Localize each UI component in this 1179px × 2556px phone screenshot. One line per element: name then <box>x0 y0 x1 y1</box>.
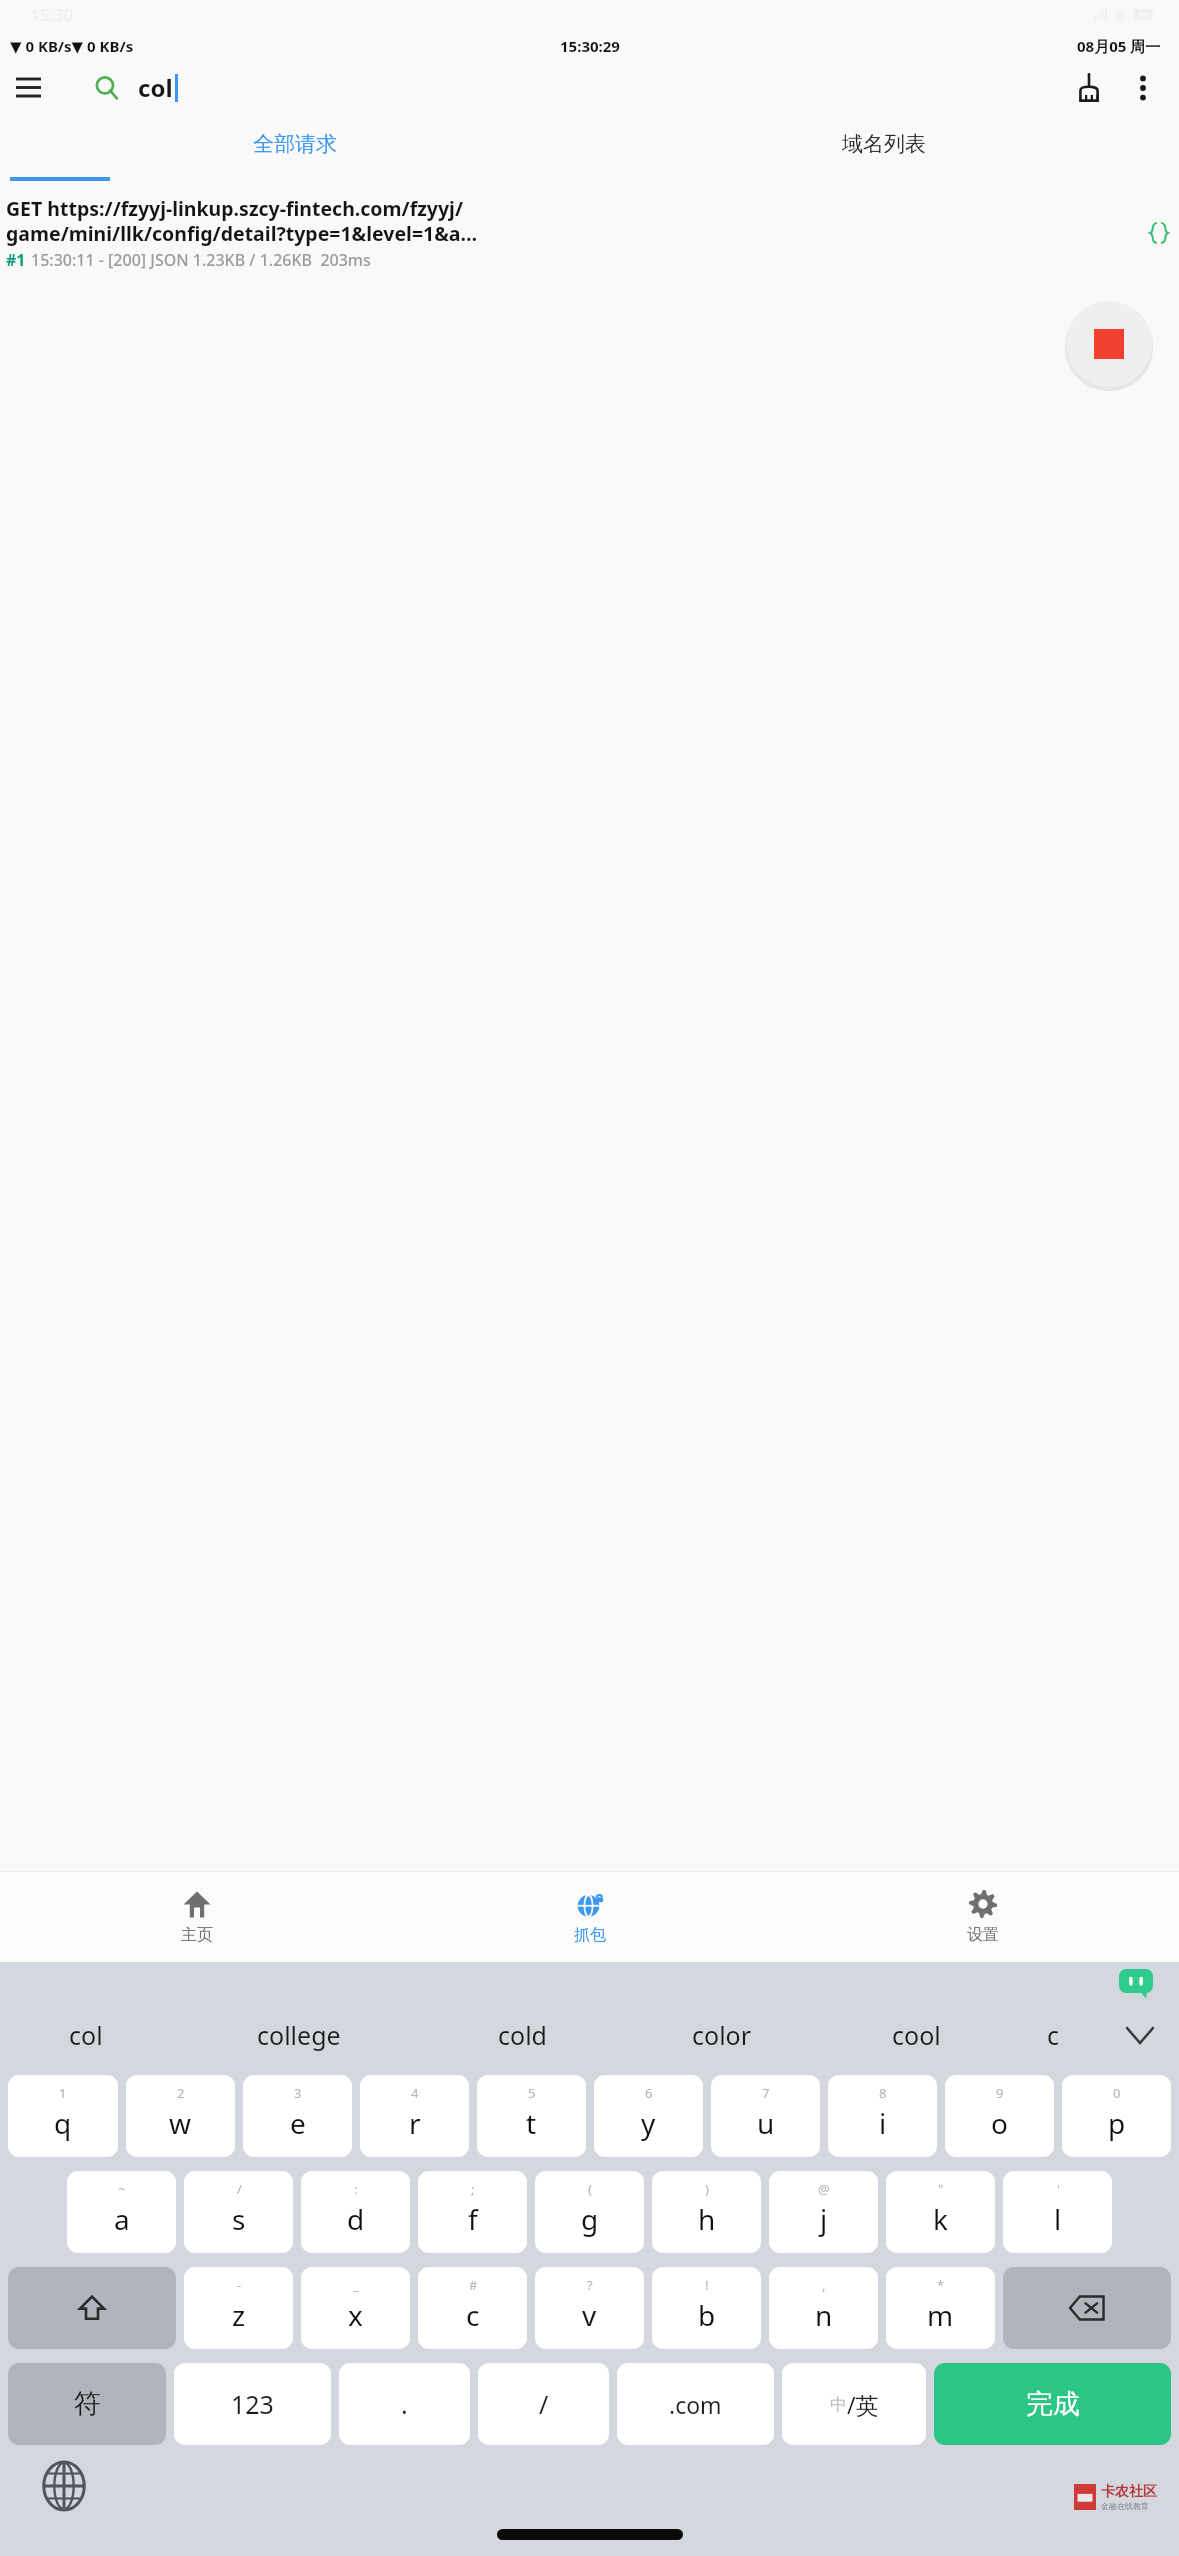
staticText: v <box>582 2296 597 2334</box>
button[interactable]: Stop capture <box>1066 301 1152 387</box>
staticText: 卡农社区 <box>1101 2483 1157 2501</box>
button[interactable]: 6 <box>594 2075 703 2157</box>
button[interactable]: ' <box>1003 2171 1112 2253</box>
button[interactable]: . <box>339 2363 470 2445</box>
staticText: col <box>138 71 173 104</box>
staticText: / <box>539 2387 549 2421</box>
button[interactable]: ! <box>652 2267 761 2349</box>
button[interactable]: ? <box>535 2267 644 2349</box>
button[interactable]: @ <box>769 2171 878 2253</box>
button[interactable]: Clear <box>1061 64 1117 111</box>
button[interactable]: Shift <box>8 2267 176 2349</box>
staticText: 9 <box>996 2084 1004 2102</box>
button[interactable]: : <box>301 2171 410 2253</box>
staticText: s <box>232 2200 246 2238</box>
staticText: t <box>526 2104 537 2142</box>
button[interactable]: ) <box>652 2171 761 2253</box>
staticText: - <box>237 2276 242 2294</box>
other: Search <box>94 75 120 101</box>
staticText: ~ <box>118 2180 126 2198</box>
staticText: o <box>991 2104 1008 2142</box>
staticText: /英 <box>847 2389 879 2420</box>
staticText: # <box>469 2276 478 2294</box>
button[interactable]: - <box>184 2267 293 2349</box>
button[interactable]: 7 <box>711 2075 820 2157</box>
button[interactable]: 123 <box>174 2363 331 2445</box>
staticText: m <box>927 2296 954 2334</box>
button[interactable]: _ <box>301 2267 410 2349</box>
staticText: 15:30:29 <box>560 36 620 56</box>
button[interactable]: / <box>184 2171 293 2253</box>
button[interactable]: ( <box>535 2171 644 2253</box>
button[interactable]: 全部请求 <box>0 111 589 177</box>
staticText: h <box>698 2200 716 2238</box>
staticText: ' <box>1057 2180 1060 2198</box>
button[interactable]: / <box>478 2363 609 2445</box>
other: JSON <box>1149 222 1169 244</box>
button[interactable]: ~ <box>67 2171 176 2253</box>
button[interactable]: 2 <box>126 2075 235 2157</box>
button[interactable]: 完成 <box>934 2363 1171 2445</box>
button[interactable]: ; <box>418 2171 527 2253</box>
button[interactable]: 4 <box>360 2075 469 2157</box>
staticText: 抓包 <box>574 1925 606 1945</box>
staticText: a <box>114 2200 130 2238</box>
button[interactable]: .com <box>617 2363 774 2445</box>
staticText: . <box>401 2387 408 2421</box>
staticText: 设置 <box>967 1925 999 1945</box>
staticText: 15:30 <box>30 3 74 26</box>
staticText: x <box>348 2296 363 2334</box>
button[interactable]: 抓包 <box>393 1872 786 1962</box>
staticText: college <box>257 2018 341 2052</box>
button[interactable]: # <box>418 2267 527 2349</box>
staticText: 全部请求 <box>253 131 337 157</box>
button[interactable]: color <box>617 2006 826 2064</box>
button[interactable]: 9 <box>945 2075 1054 2157</box>
staticText: 主页 <box>181 1925 213 1945</box>
staticText: 08月05 周一 <box>1077 36 1161 56</box>
button[interactable]: 8 <box>828 2075 937 2157</box>
button[interactable]: 主页 <box>0 1872 393 1962</box>
staticText: col <box>69 2018 103 2052</box>
button[interactable]: Collapse suggestions <box>1101 2006 1179 2064</box>
staticText: ? <box>587 2276 593 2294</box>
staticText: c <box>466 2296 480 2334</box>
staticText: f <box>468 2200 478 2238</box>
staticText: b <box>698 2296 716 2334</box>
staticText: .com <box>669 2389 722 2420</box>
staticText: 4 <box>411 2084 419 2102</box>
button[interactable]: Switch Chinese English <box>782 2363 926 2445</box>
button[interactable]: * <box>886 2267 995 2349</box>
button[interactable]: 符 <box>8 2363 166 2445</box>
button[interactable]: , <box>769 2267 878 2349</box>
button[interactable]: cold <box>427 2006 617 2064</box>
button[interactable]: col <box>0 2006 171 2064</box>
staticText: ▼ 0 KB/s▼ 0 KB/s <box>10 36 134 56</box>
staticText: 域名列表 <box>842 131 926 157</box>
staticText: 金融在线教育 <box>1101 2501 1149 2511</box>
staticText: n <box>815 2296 833 2334</box>
staticText: i <box>879 2104 887 2142</box>
button[interactable]: 5 <box>477 2075 586 2157</box>
button[interactable]: cool <box>826 2006 1006 2064</box>
button[interactable]: college <box>171 2006 427 2064</box>
button[interactable]: 1 <box>8 2075 118 2157</box>
staticText: 8 <box>879 2084 887 2102</box>
staticText: ) <box>705 2180 709 2198</box>
staticText: , <box>822 2276 826 2294</box>
staticText: cool <box>892 2018 941 2052</box>
button[interactable]: GET https://fzyyj-linkup.szcy-fintech.co… <box>0 191 1179 277</box>
button[interactable]: More options <box>1117 64 1169 111</box>
button[interactable]: Change language <box>38 2460 90 2512</box>
staticText: 1 <box>59 2084 67 2102</box>
button[interactable]: 0 <box>1062 2075 1171 2157</box>
staticText: q <box>54 2104 72 2142</box>
button[interactable]: 设置 <box>786 1872 1179 1962</box>
button[interactable]: 3 <box>243 2075 352 2157</box>
staticText: 15:30:11 - [200] JSON 1.23KB / 1.26KB 20… <box>31 249 371 271</box>
button[interactable]: c <box>1006 2006 1101 2064</box>
button[interactable]: 域名列表 <box>589 111 1179 177</box>
button[interactable]: Menu <box>0 64 56 111</box>
button[interactable]: " <box>886 2171 995 2253</box>
button[interactable]: Backspace <box>1003 2267 1171 2349</box>
